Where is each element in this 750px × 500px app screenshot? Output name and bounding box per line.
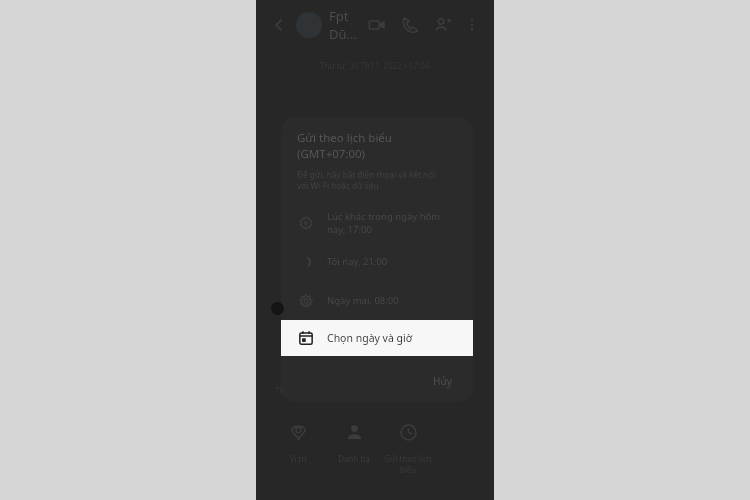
staticText: Lúc khác trong ngày hôm nay, 17:00: [327, 210, 441, 236]
staticText: Fpt Dũ...: [329, 7, 364, 43]
staticText: Thứ tư, 30 Th11, 2022 • 17:04: [320, 60, 430, 71]
staticText: Để gửi, hãy bật điện thoại và kết nối vớ…: [297, 169, 436, 191]
button[interactable]: Ngày mai, 08:00: [281, 281, 473, 320]
button[interactable]: Gửi theo lịch biểu: [382, 420, 434, 479]
button[interactable]: Contact avatar: [296, 12, 322, 38]
button[interactable]: Call: [397, 12, 423, 38]
staticText: Gửi theo lịch biểu: [384, 453, 432, 475]
button[interactable]: Video call: [364, 12, 390, 38]
staticText: Chọn ngày và giờ: [327, 331, 413, 345]
staticText: Th..: [275, 385, 289, 396]
button[interactable]: Danh bạ: [326, 420, 382, 468]
button[interactable]: Back: [266, 12, 292, 38]
button[interactable]: Vị trí: [270, 420, 326, 468]
staticText: Vị trí: [289, 453, 307, 464]
button[interactable]: Lúc khác trong ngày hôm nay, 17:00: [281, 203, 473, 242]
staticText: Ngày mai, 08:00: [327, 294, 399, 307]
staticText: Gửi theo lịch biểu (GMT+07:00): [297, 130, 392, 161]
button[interactable]: Hủy: [425, 370, 461, 392]
button[interactable]: Chọn ngày và giờ: [281, 320, 473, 356]
staticText: Hủy: [433, 374, 453, 388]
button[interactable]: Add people: [430, 12, 456, 38]
staticText: Danh bạ: [338, 453, 370, 464]
staticText: Tối nay, 21:00: [327, 255, 388, 268]
